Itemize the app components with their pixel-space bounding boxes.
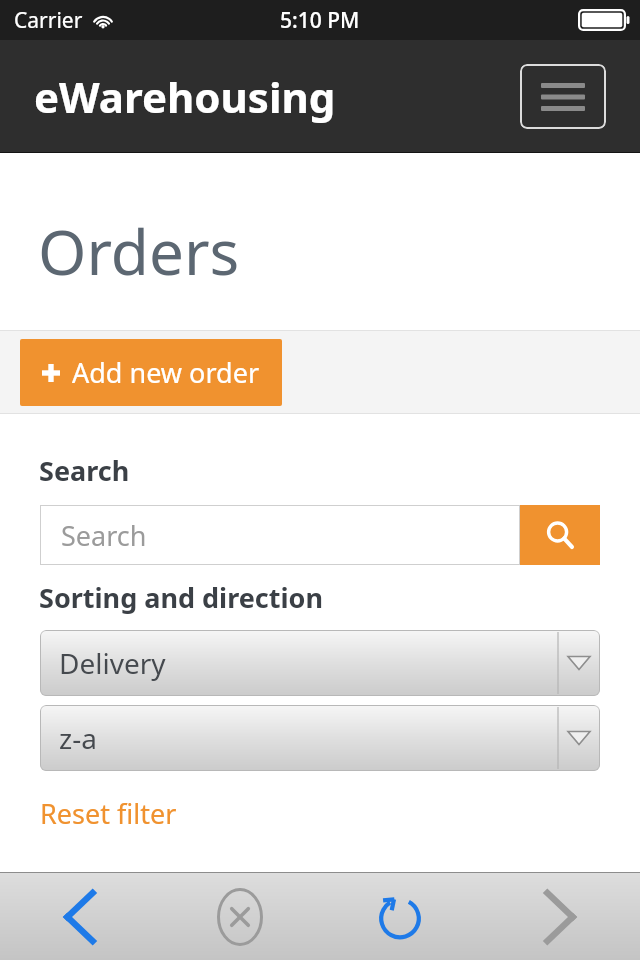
button[interactable]	[40, 888, 600, 948]
staticText: Search	[39, 452, 130, 489]
button[interactable]: Forward	[480, 873, 640, 960]
button[interactable]: Search	[40, 505, 520, 565]
staticText: Carrier	[14, 6, 83, 35]
button[interactable]: Stop	[160, 873, 320, 960]
staticText: Sorting and direction	[39, 579, 323, 616]
button[interactable]: Menu	[520, 64, 606, 129]
staticText: z-a	[59, 719, 97, 757]
button[interactable]: Add new order	[20, 339, 282, 406]
staticText: Orders	[38, 209, 240, 293]
staticText: Reset filter	[40, 795, 177, 832]
staticText: Add new order	[72, 354, 260, 391]
staticText: eWarehousing	[34, 68, 336, 125]
button[interactable]: Back	[0, 873, 160, 960]
button[interactable]: Delivery	[40, 630, 600, 696]
button[interactable]: Reload	[320, 873, 480, 960]
button[interactable]: z-a	[40, 705, 600, 771]
button[interactable]: Reset filter	[40, 795, 177, 832]
staticText: 5:10 PM	[280, 6, 360, 35]
staticText: Search	[61, 517, 147, 554]
staticText: Delivery	[59, 644, 166, 682]
button[interactable]: Search	[520, 505, 600, 565]
